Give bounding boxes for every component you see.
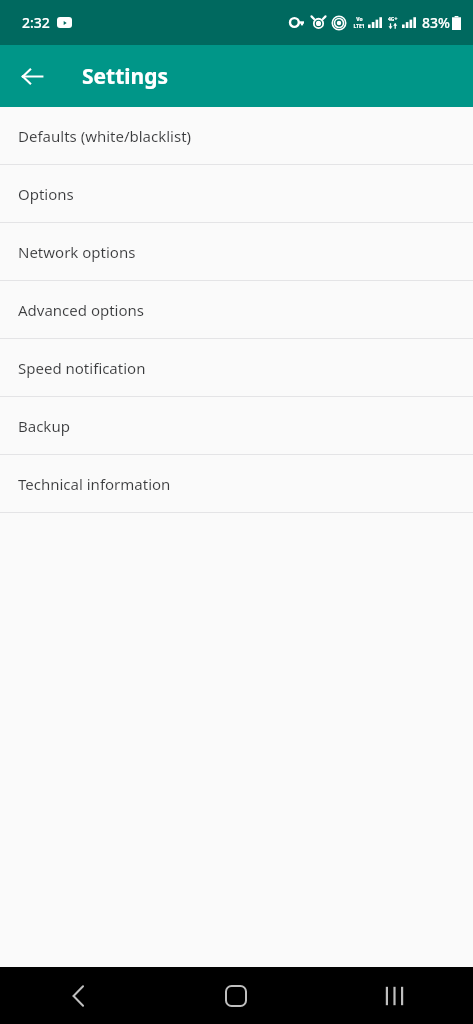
button[interactable]: Options	[0, 165, 473, 222]
staticText: Technical information	[18, 474, 171, 494]
staticText: Backup	[18, 416, 70, 436]
button[interactable]: Technical information	[0, 455, 473, 512]
button[interactable]: Speed notification	[0, 339, 473, 396]
button[interactable]: Defaults (white/blacklist)	[0, 107, 473, 164]
staticText: LTE1	[353, 23, 365, 30]
staticText: Speed notification	[18, 358, 146, 378]
staticText: Defaults (white/blacklist)	[18, 126, 192, 146]
button[interactable]: Back	[0, 967, 157, 1024]
button[interactable]: Network options	[0, 223, 473, 280]
staticText: Vo	[356, 16, 363, 23]
staticText: Advanced options	[18, 300, 145, 320]
staticText: Settings	[82, 62, 169, 91]
button[interactable]: Backup	[0, 397, 473, 454]
staticText: 83%	[422, 13, 450, 32]
button[interactable]: Back	[8, 52, 56, 100]
button[interactable]: Recent apps	[315, 967, 473, 1024]
staticText: Network options	[18, 242, 136, 262]
button[interactable]: Home	[157, 967, 315, 1024]
staticText: 2:32	[22, 13, 50, 32]
staticText: Options	[18, 184, 74, 204]
staticText: 4G+	[388, 16, 398, 23]
button[interactable]: Advanced options	[0, 281, 473, 338]
